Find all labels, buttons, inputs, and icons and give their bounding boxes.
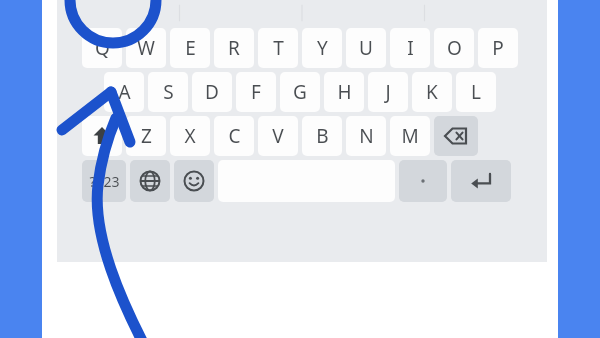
- staticText: R: [228, 35, 240, 61]
- button[interactable]: Period: [399, 160, 447, 202]
- button[interactable]: Enter: [451, 160, 511, 202]
- button[interactable]: Backspace: [434, 116, 478, 156]
- button[interactable]: A: [104, 72, 144, 112]
- button[interactable]: Emoji: [174, 160, 214, 202]
- button[interactable]: Z: [126, 116, 166, 156]
- button[interactable]: T: [258, 28, 298, 68]
- button[interactable]: M: [390, 116, 430, 156]
- staticText: T: [273, 35, 284, 61]
- button[interactable]: ?123: [82, 160, 126, 202]
- button[interactable]: Change language: [130, 160, 170, 202]
- button[interactable]: X: [170, 116, 210, 156]
- staticText: U: [359, 35, 373, 61]
- staticText: Q: [95, 35, 110, 61]
- staticText: N: [359, 123, 374, 149]
- button[interactable]: C: [214, 116, 254, 156]
- staticText: G: [293, 79, 307, 105]
- button[interactable]: V: [258, 116, 298, 156]
- button[interactable]: B: [302, 116, 342, 156]
- button[interactable]: O: [434, 28, 474, 68]
- button[interactable]: Shift: [82, 116, 122, 156]
- button[interactable]: L: [456, 72, 496, 112]
- button[interactable]: K: [412, 72, 452, 112]
- button[interactable]: D: [192, 72, 232, 112]
- staticText: K: [426, 79, 438, 105]
- staticText: C: [228, 123, 241, 149]
- button[interactable]: N: [346, 116, 386, 156]
- staticText: M: [401, 123, 419, 149]
- staticText: H: [337, 79, 352, 105]
- staticText: O: [447, 35, 462, 61]
- staticText: B: [316, 123, 329, 149]
- staticText: E: [185, 35, 196, 61]
- staticText: X: [184, 123, 196, 149]
- staticText: D: [205, 79, 219, 105]
- button[interactable]: F: [236, 72, 276, 112]
- staticText: Y: [317, 35, 328, 61]
- staticText: J: [385, 79, 391, 105]
- staticText: A: [118, 79, 131, 105]
- button[interactable]: R: [214, 28, 254, 68]
- staticText: S: [163, 79, 174, 105]
- button[interactable]: E: [170, 28, 210, 68]
- button[interactable]: P: [478, 28, 518, 68]
- staticText: ?123: [89, 172, 120, 191]
- button[interactable]: W: [126, 28, 166, 68]
- button[interactable]: Y: [302, 28, 342, 68]
- button[interactable]: S: [148, 72, 188, 112]
- button[interactable]: I: [390, 28, 430, 68]
- staticText: I: [407, 35, 414, 61]
- button[interactable]: H: [324, 72, 364, 112]
- button[interactable]: G: [280, 72, 320, 112]
- staticText: F: [251, 79, 261, 105]
- button[interactable]: U: [346, 28, 386, 68]
- button[interactable]: Q: [82, 28, 122, 68]
- staticText: V: [272, 123, 284, 149]
- button[interactable]: J: [368, 72, 408, 112]
- staticText: Z: [141, 123, 152, 149]
- staticText: L: [471, 79, 481, 105]
- staticText: W: [137, 35, 155, 61]
- staticText: P: [492, 35, 504, 61]
